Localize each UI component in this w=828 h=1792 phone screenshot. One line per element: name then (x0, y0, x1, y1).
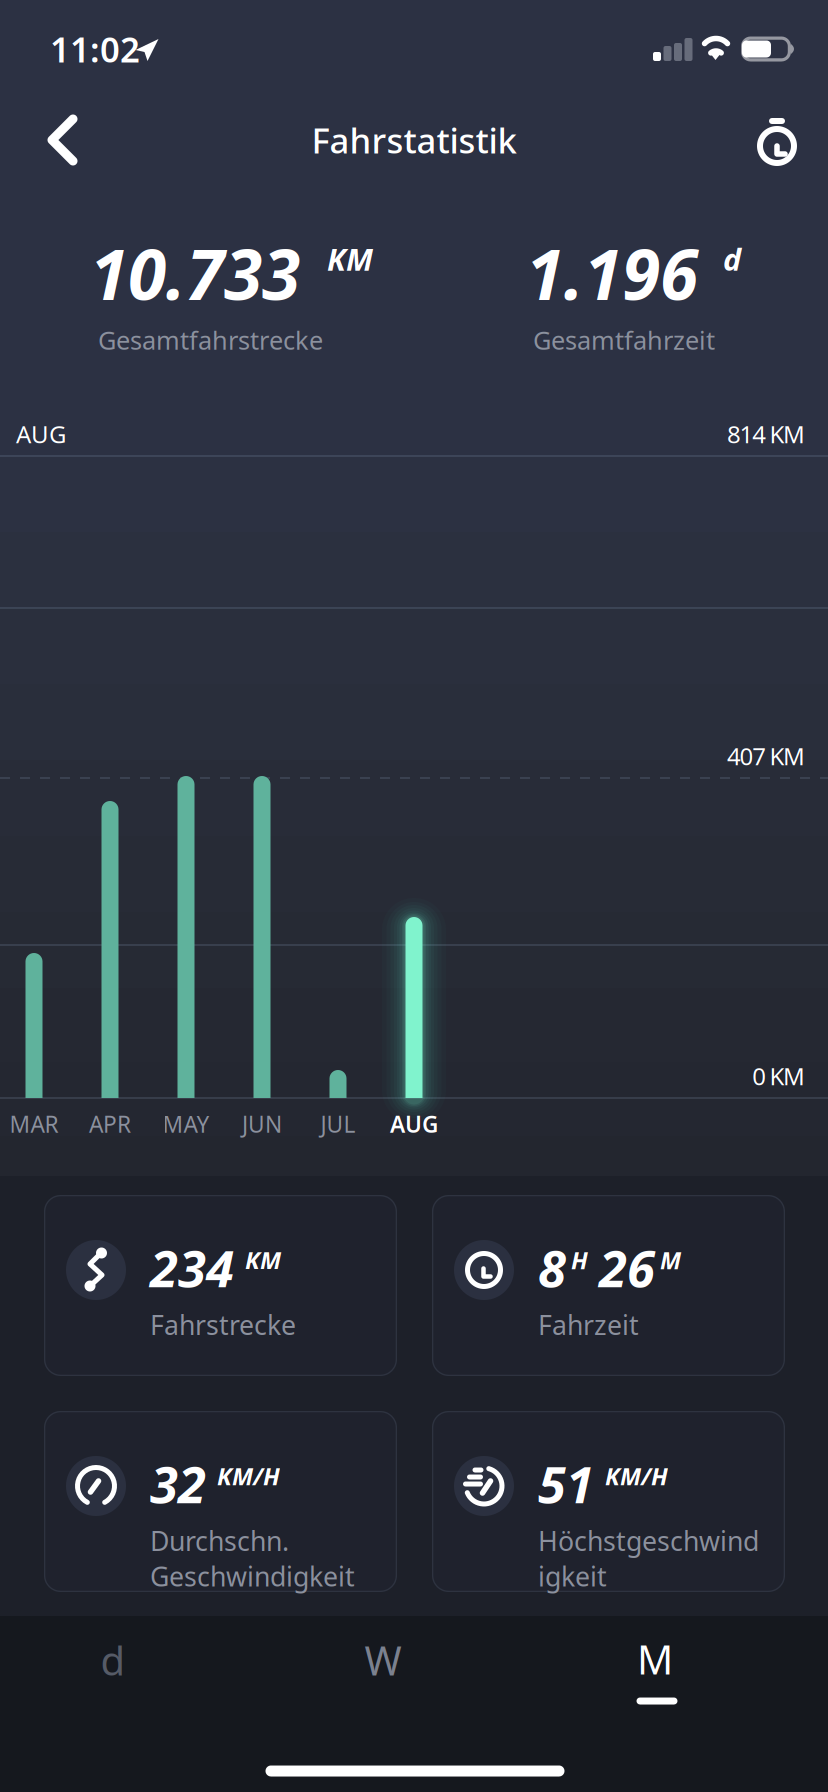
button[interactable]: 32 (44, 1411, 397, 1592)
staticText: KM/H (605, 1460, 668, 1492)
staticText: Fahrstrecke (150, 1307, 296, 1342)
staticText: AUG (16, 418, 66, 450)
button[interactable]: W (258, 1605, 508, 1715)
staticText: Durchschn. Geschwindigkeit (150, 1523, 355, 1594)
staticText: JUN (242, 1109, 282, 1139)
staticText: d (100, 1633, 125, 1686)
staticText: JUL (320, 1109, 355, 1139)
staticText: Höchstgeschwind igkeit (538, 1523, 759, 1594)
staticText: 407 KM (727, 740, 805, 772)
staticText: 1.196 (526, 227, 698, 319)
staticText: APR (89, 1109, 131, 1139)
staticText: KM (327, 238, 373, 279)
staticText: M (637, 1632, 673, 1685)
staticText: 814 KM (727, 418, 805, 450)
staticText: 0 KM (752, 1060, 805, 1092)
button[interactable]: 234 (44, 1195, 397, 1376)
staticText: Gesamtfahrzeit (533, 323, 715, 357)
staticText: MAR (9, 1109, 58, 1139)
button[interactable]: 8 (432, 1195, 785, 1376)
button[interactable]: Back (27, 95, 99, 185)
staticText: H (571, 1244, 588, 1276)
staticText: KM (245, 1244, 281, 1276)
staticText: 10.733 (90, 227, 300, 319)
button[interactable]: d (0, 1605, 238, 1715)
staticText: MAY (162, 1109, 209, 1139)
staticText: 234 (150, 1234, 234, 1301)
staticText: 8 (538, 1234, 566, 1301)
staticText: W (364, 1633, 401, 1686)
button[interactable]: 51 (432, 1411, 785, 1592)
staticText: KM/H (217, 1460, 280, 1492)
staticText: M (660, 1244, 681, 1276)
staticText: 26 (599, 1234, 655, 1301)
staticText: d (723, 238, 741, 279)
staticText: AUG (390, 1109, 438, 1139)
staticText: Fahrstatistik (311, 117, 516, 163)
staticText: 51 (538, 1450, 594, 1517)
staticText: Fahrzeit (538, 1307, 639, 1342)
staticText: Gesamtfahrstrecke (98, 323, 323, 357)
staticText: 11:02 (50, 26, 140, 72)
button[interactable]: Stopwatch (733, 96, 821, 186)
button[interactable]: M (529, 1607, 779, 1717)
staticText: 32 (150, 1450, 206, 1517)
